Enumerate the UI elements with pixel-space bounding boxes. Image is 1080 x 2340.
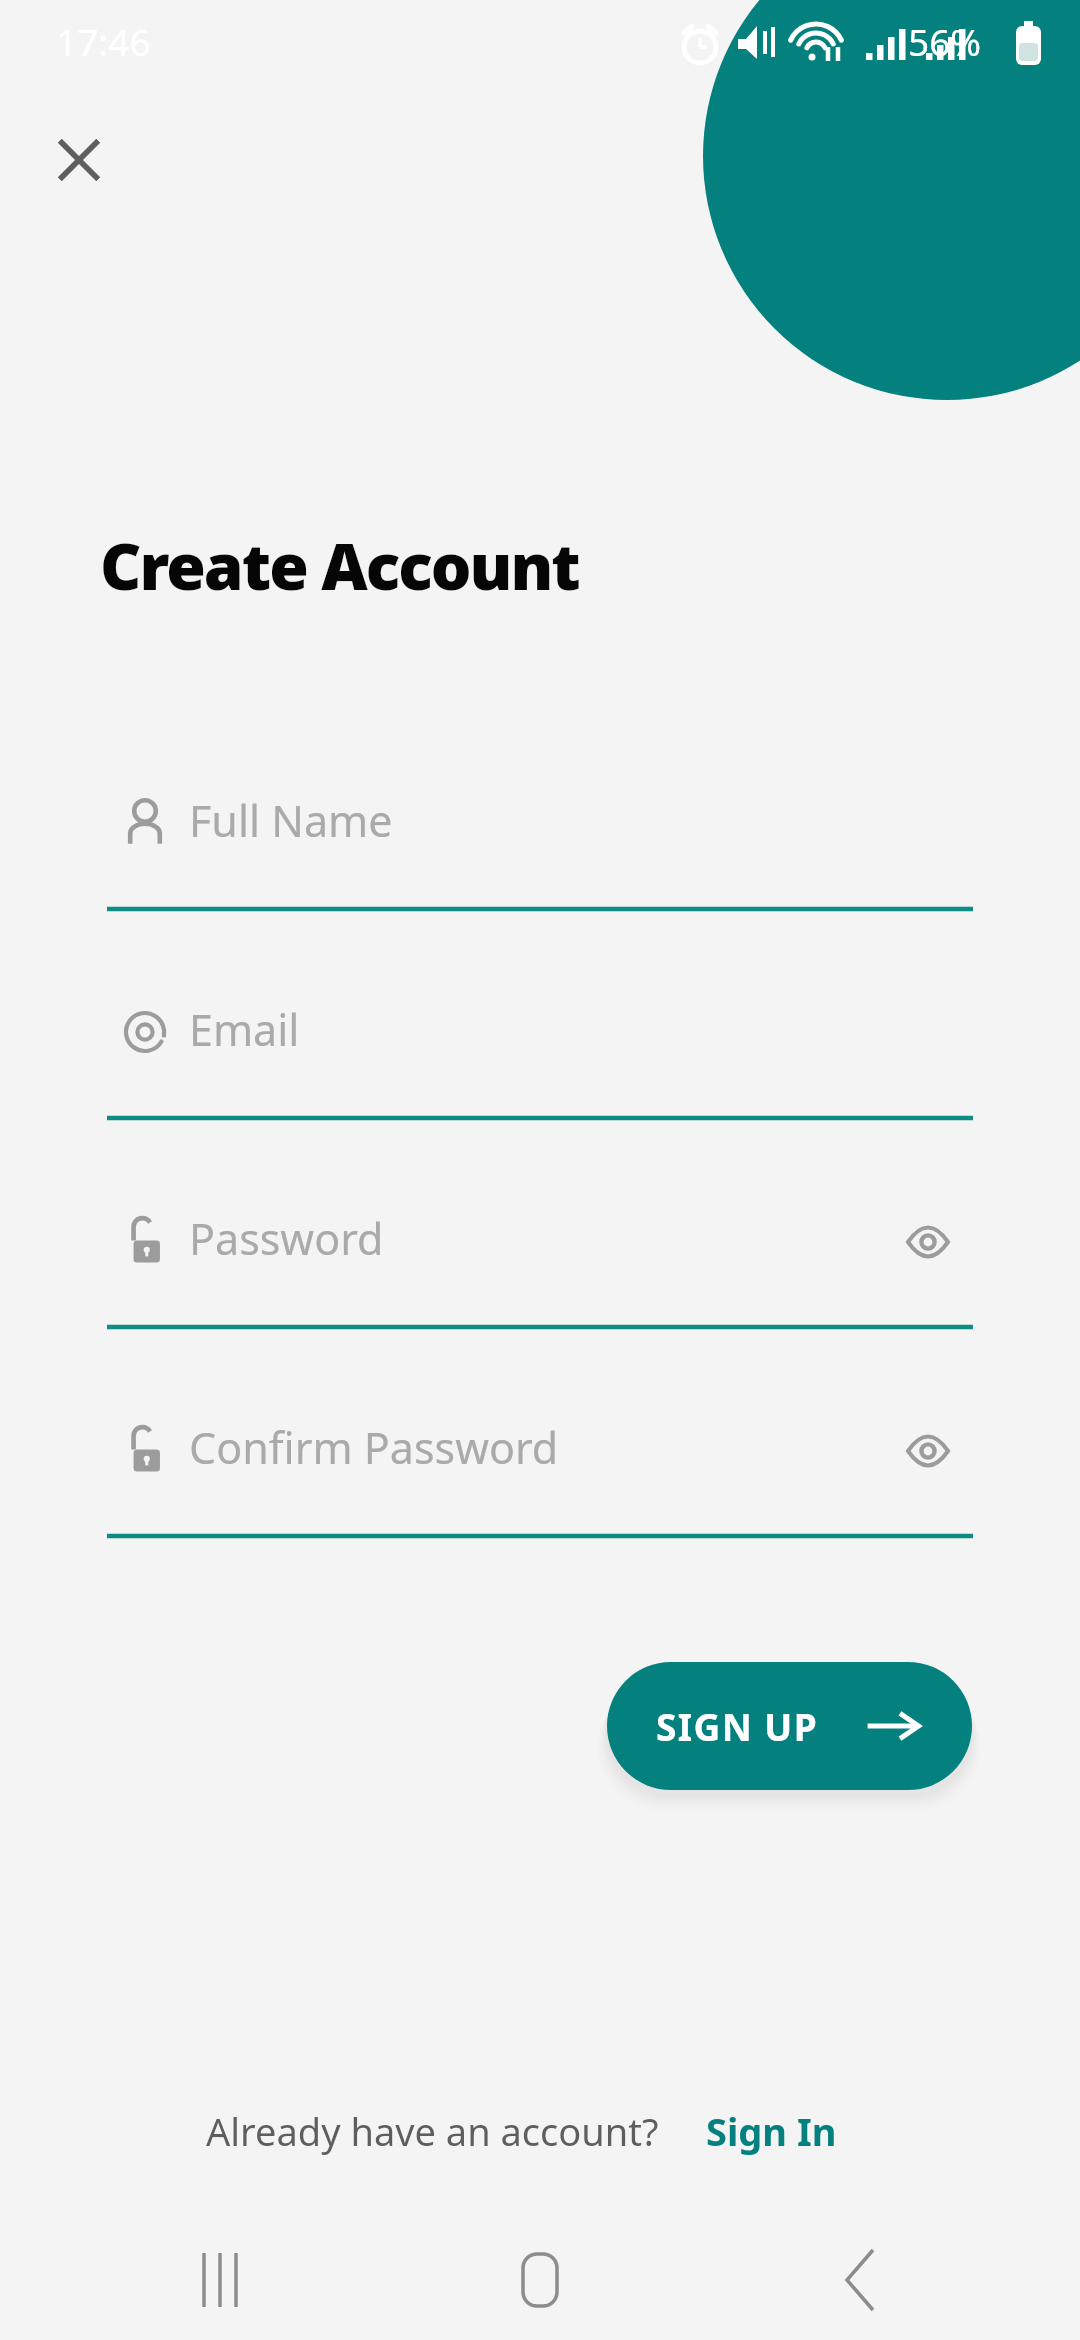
button[interactable]: Show password xyxy=(883,1197,973,1287)
button[interactable]: Close xyxy=(31,112,127,208)
staticText: Email xyxy=(189,1000,300,1059)
staticText: Already have an account? xyxy=(206,2105,659,2157)
staticText: 56% xyxy=(908,16,982,66)
staticText: Sign In xyxy=(706,2105,837,2157)
button[interactable]: Home xyxy=(490,2230,590,2330)
button[interactable]: Password xyxy=(107,1175,973,1331)
staticText: 17:46 xyxy=(56,16,151,66)
button[interactable]: Full Name xyxy=(107,757,973,913)
staticText: Password xyxy=(189,1209,384,1268)
staticText: Full Name xyxy=(189,791,393,850)
staticText: SIGN UP xyxy=(656,1701,819,1751)
button[interactable]: Recents xyxy=(170,2230,270,2330)
button[interactable]: Email xyxy=(107,966,973,1122)
button[interactable]: Back xyxy=(810,2230,910,2330)
button[interactable]: Sign In xyxy=(706,2094,856,2168)
button[interactable]: Already have an account? xyxy=(206,2094,676,2168)
button[interactable]: Confirm Password xyxy=(107,1384,973,1540)
staticText: Create Account xyxy=(100,522,579,609)
button[interactable]: Show password xyxy=(883,1406,973,1496)
button[interactable]: SIGN UP xyxy=(607,1662,972,1790)
staticText: Confirm Password xyxy=(189,1418,559,1477)
